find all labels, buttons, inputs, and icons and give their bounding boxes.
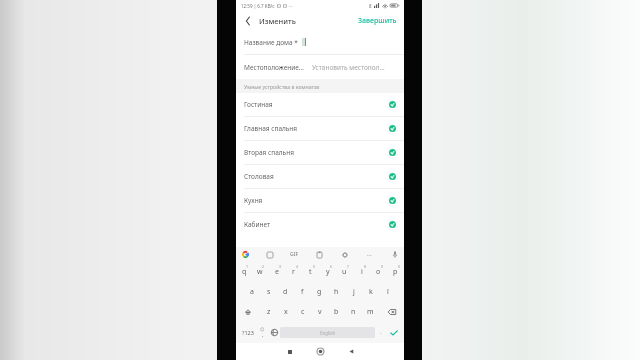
staticText: Название дома *: [244, 38, 298, 47]
button[interactable]: English: [280, 327, 375, 338]
button[interactable]: i: [353, 262, 370, 282]
staticText: o: [376, 267, 381, 277]
staticText: ·: [380, 329, 382, 337]
button[interactable]: s: [260, 282, 277, 302]
staticText: h: [334, 287, 339, 297]
button[interactable]: Change language: [268, 322, 280, 343]
staticText: a: [250, 287, 254, 297]
button[interactable]: More options: [364, 249, 375, 260]
button[interactable]: v: [311, 302, 328, 322]
button[interactable]: Гостиная: [236, 93, 404, 116]
staticText: 0: [398, 264, 400, 269]
button[interactable]: Главная спальня: [236, 117, 404, 140]
staticText: Кабинет: [244, 220, 389, 229]
staticText: c: [301, 307, 305, 317]
staticText: 7: [347, 264, 349, 269]
button[interactable]: t: [302, 262, 319, 282]
staticText: s: [267, 287, 271, 297]
button[interactable]: Google search: [240, 249, 251, 260]
button[interactable]: x: [277, 302, 294, 322]
button[interactable]: Кухня: [236, 189, 404, 212]
button[interactable]: d: [277, 282, 294, 302]
button[interactable]: Back: [336, 343, 367, 360]
button[interactable]: GIF: [288, 249, 301, 260]
staticText: 4: [296, 264, 298, 269]
staticText: r: [292, 267, 295, 277]
button[interactable]: Done: [386, 322, 401, 343]
button[interactable]: Home: [305, 343, 336, 360]
button[interactable]: Shift: [236, 302, 260, 322]
button[interactable]: g: [311, 282, 328, 302]
button[interactable]: a: [243, 282, 260, 302]
staticText: 1: [246, 264, 248, 269]
staticText: 12:59 | 6.7 KB/c: [241, 3, 275, 9]
button[interactable]: Clipboard: [314, 249, 325, 260]
button[interactable]: Comma: [257, 322, 268, 343]
button[interactable]: Столовая: [236, 165, 404, 188]
staticText: Главная спальня: [244, 124, 389, 133]
staticText: m: [367, 307, 374, 317]
button[interactable]: j: [345, 282, 362, 302]
button[interactable]: Stickers: [264, 249, 275, 260]
button[interactable]: Местоположение…: [236, 55, 404, 79]
button[interactable]: m: [362, 302, 379, 322]
staticText: Установить местопол…: [312, 63, 396, 72]
button[interactable]: f: [294, 282, 311, 302]
button[interactable]: Back: [241, 14, 255, 28]
button[interactable]: y: [319, 262, 336, 282]
staticText: x: [284, 307, 288, 317]
button[interactable]: b: [328, 302, 345, 322]
staticText: 2: [262, 264, 264, 269]
button[interactable]: u: [336, 262, 353, 282]
staticText: 5: [313, 264, 315, 269]
staticText: d: [283, 287, 288, 297]
staticText: p: [393, 267, 398, 277]
staticText: l: [387, 287, 389, 297]
staticText: i: [361, 267, 363, 277]
button[interactable]: Voice input: [389, 249, 400, 260]
staticText: Гостиная: [244, 100, 389, 109]
button[interactable]: Кабинет: [236, 213, 404, 236]
staticText: ···: [367, 251, 372, 259]
button[interactable]: w: [252, 262, 268, 282]
button[interactable]: Вторая спальня: [236, 141, 404, 164]
button[interactable]: o: [370, 262, 387, 282]
button[interactable]: h: [328, 282, 345, 302]
staticText: b: [334, 307, 339, 317]
button[interactable]: ?123: [239, 322, 257, 343]
staticText: ☺: [260, 327, 265, 332]
staticText: k: [369, 287, 373, 297]
button[interactable]: r: [285, 262, 302, 282]
button[interactable]: Settings: [339, 249, 350, 260]
staticText: Изменить информаци…: [259, 16, 307, 26]
button[interactable]: z: [260, 302, 277, 322]
button[interactable]: c: [294, 302, 311, 322]
button[interactable]: q: [236, 262, 252, 282]
staticText: GIF: [290, 251, 299, 258]
button[interactable]: Backspace: [379, 302, 404, 322]
button[interactable]: Название дома *: [236, 30, 404, 54]
button[interactable]: Завершить: [356, 14, 399, 28]
staticText: f: [301, 287, 304, 297]
staticText: English: [320, 330, 336, 336]
staticText: Умные устройства в комнатах: [244, 83, 320, 90]
button[interactable]: Recents: [274, 343, 305, 360]
button[interactable]: k: [362, 282, 379, 302]
button[interactable]: p: [387, 262, 404, 282]
staticText: 8: [364, 264, 366, 269]
button[interactable]: e: [268, 262, 285, 282]
staticText: g: [317, 287, 322, 297]
button[interactable]: l: [379, 282, 396, 302]
staticText: Местоположение…: [244, 63, 304, 72]
staticText: t: [309, 267, 312, 277]
staticText: ,: [262, 332, 264, 339]
staticText: ···: [289, 3, 293, 9]
staticText: w: [257, 267, 263, 277]
staticText: e: [275, 267, 279, 277]
button[interactable]: n: [345, 302, 362, 322]
staticText: y: [326, 267, 330, 277]
staticText: q: [242, 267, 247, 277]
staticText: v: [318, 307, 322, 317]
staticText: 6: [330, 264, 332, 269]
